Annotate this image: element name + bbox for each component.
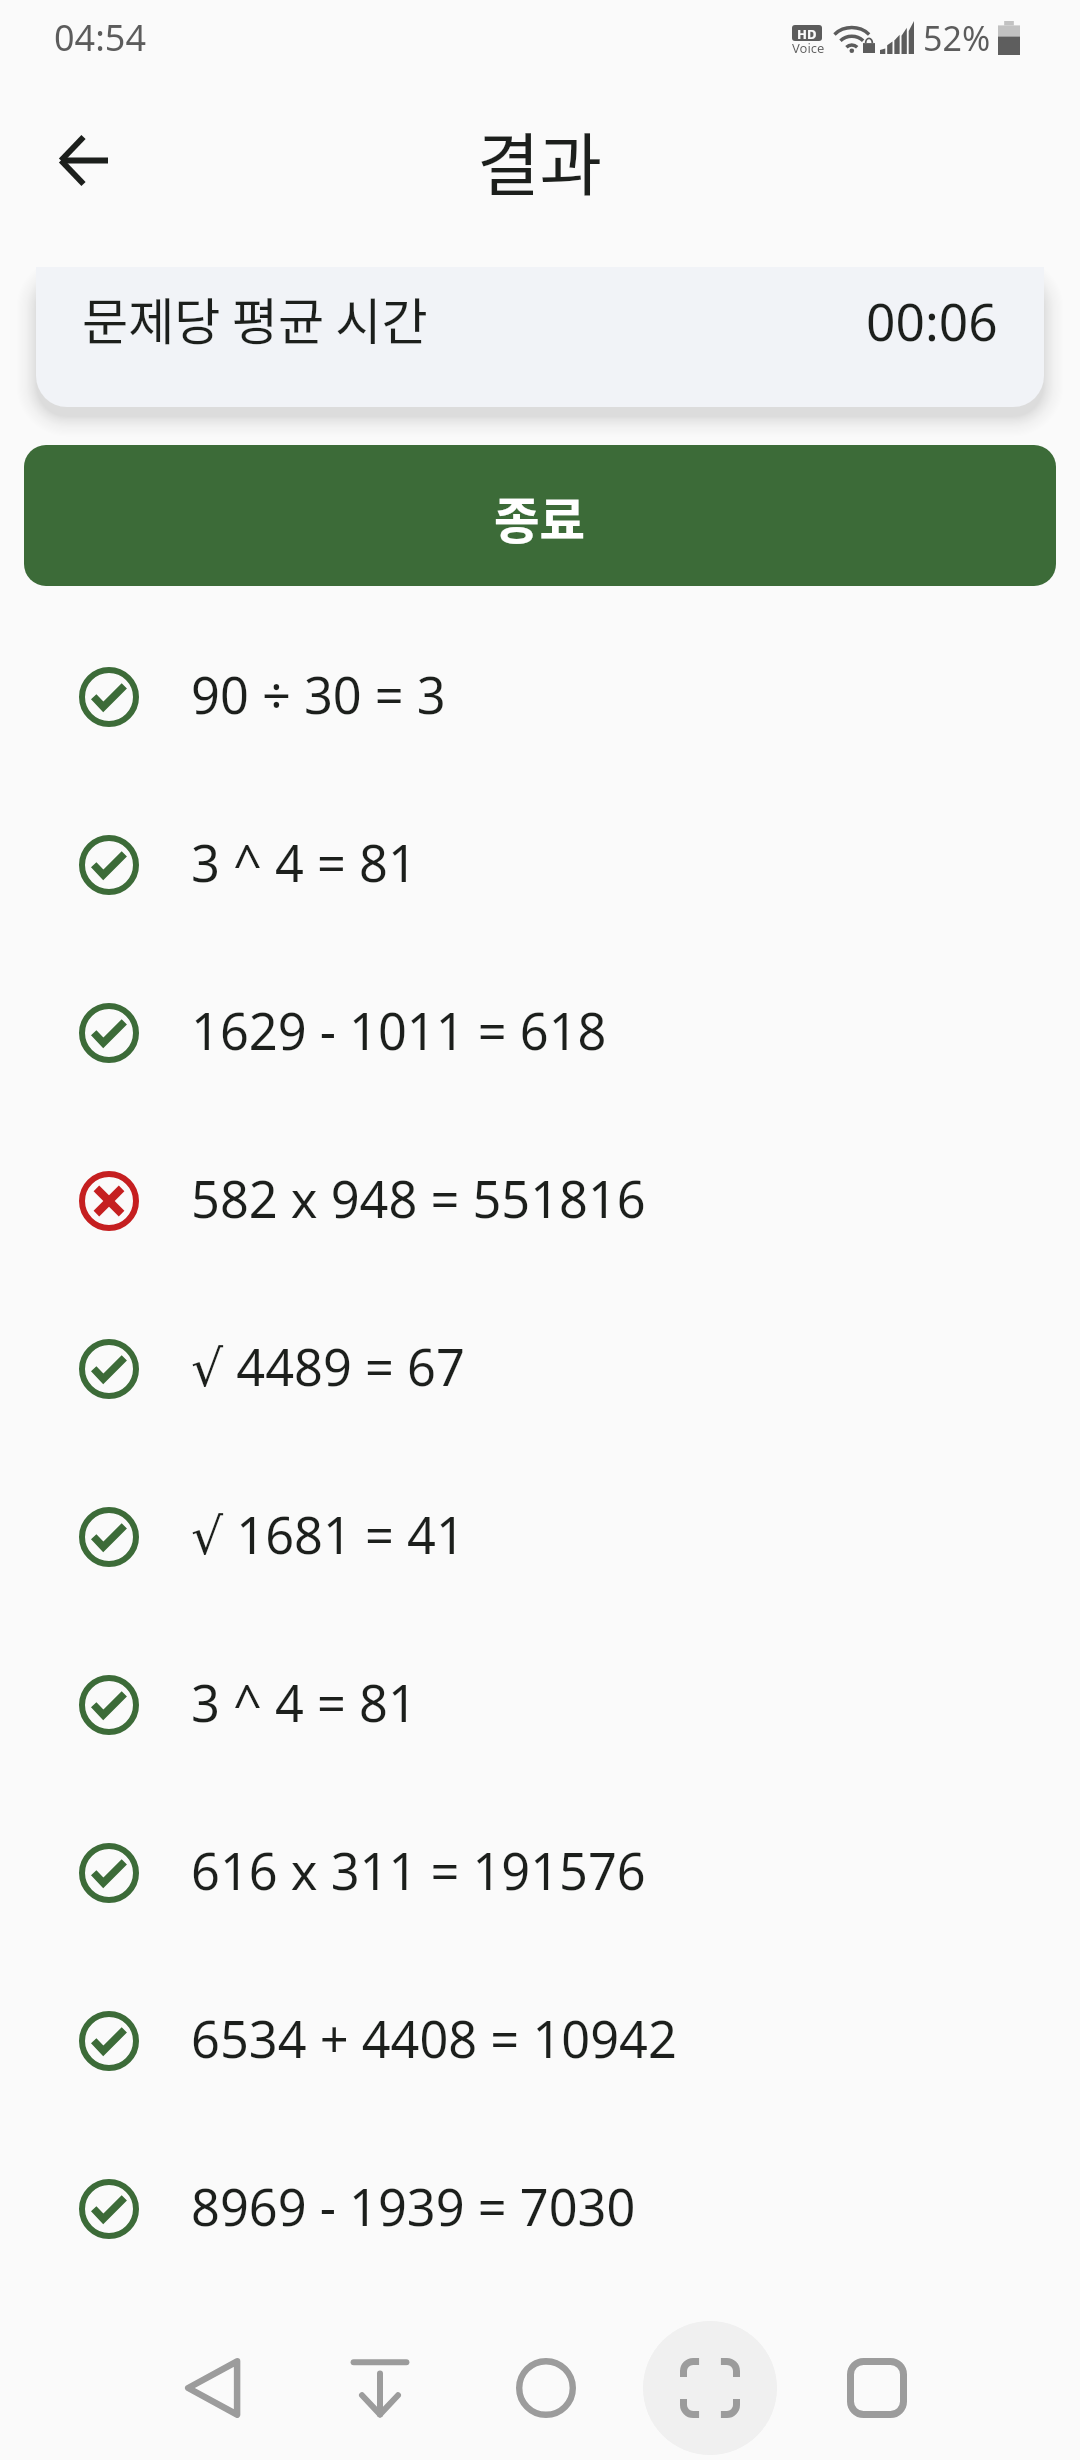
staticText: 1629 - 1011 = 618: [191, 996, 607, 1065]
button[interactable]: 종료: [24, 445, 1056, 586]
staticText: 52%: [923, 15, 991, 61]
staticText: HD: [797, 25, 817, 41]
staticText: 90 ÷ 30 = 3: [191, 660, 446, 729]
button[interactable]: 90 ÷ 30 = 3: [0, 613, 1080, 781]
button[interactable]: 6534 + 4408 = 10942: [0, 1957, 1080, 2125]
button[interactable]: √ 4489 = 67: [0, 1285, 1080, 1453]
button[interactable]: 3 ^ 4 = 81: [0, 1621, 1080, 1789]
staticText: 3 ^ 4 = 81: [191, 828, 417, 897]
staticText: Voice: [792, 39, 825, 57]
button[interactable]: 1629 - 1011 = 618: [0, 949, 1080, 1117]
button[interactable]: 문제당 평균 시간: [36, 267, 1044, 407]
staticText: 문제당 평균 시간: [82, 282, 428, 355]
staticText: 결과: [477, 111, 603, 209]
staticText: 616 x 311 = 191576: [191, 1836, 646, 1905]
staticText: 종료: [494, 482, 586, 554]
staticText: 582 x 948 = 551816: [191, 1164, 646, 1233]
staticText: √ 4489 = 67: [191, 1332, 465, 1401]
button[interactable]: 582 x 948 = 551816: [0, 1117, 1080, 1285]
button[interactable]: Download: [313, 2321, 447, 2455]
staticText: 6534 + 4408 = 10942: [191, 2004, 677, 2073]
button[interactable]: Screenshot: [643, 2321, 777, 2455]
staticText: 00:06: [866, 286, 998, 356]
button[interactable]: √ 1681 = 41: [0, 1453, 1080, 1621]
staticText: 8969 - 1939 = 7030: [191, 2172, 636, 2241]
button[interactable]: 8969 - 1939 = 7030: [0, 2125, 1080, 2293]
button[interactable]: 3 ^ 4 = 81: [0, 781, 1080, 949]
button[interactable]: Recents: [810, 2321, 944, 2455]
button[interactable]: Back: [147, 2321, 281, 2455]
button[interactable]: Home: [479, 2321, 613, 2455]
staticText: √ 1681 = 41: [191, 1500, 465, 1569]
button[interactable]: 616 x 311 = 191576: [0, 1789, 1080, 1957]
staticText: 04:54: [54, 13, 147, 62]
staticText: 3 ^ 4 = 81: [191, 1668, 417, 1737]
button[interactable]: Back: [33, 110, 133, 210]
